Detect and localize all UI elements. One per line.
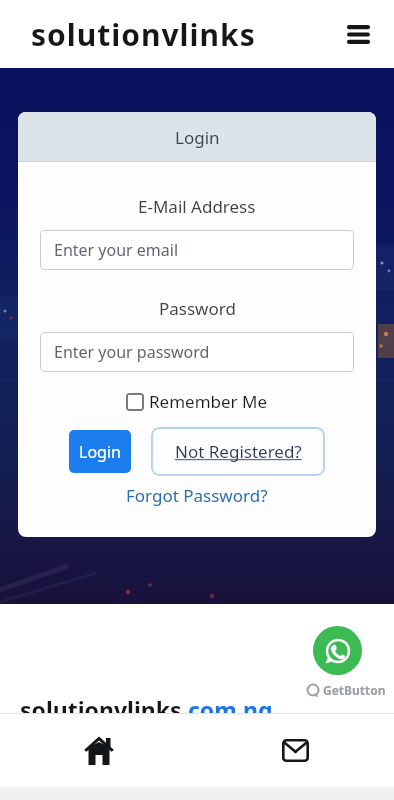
button[interactable]	[313, 626, 362, 675]
staticText: Password	[159, 297, 236, 320]
button[interactable]: Login	[69, 430, 131, 473]
staticText: GetButton	[323, 682, 386, 698]
button[interactable]	[197, 714, 394, 787]
button[interactable]	[338, 14, 378, 54]
button[interactable]: Enter your email	[40, 230, 354, 270]
button[interactable]: Remember Me	[18, 390, 376, 413]
button[interactable]: Enter your password	[40, 332, 354, 372]
staticText: Enter your email	[54, 239, 179, 261]
button[interactable]	[0, 714, 197, 787]
staticText: Login	[79, 441, 121, 463]
staticText: Not Registered?	[175, 440, 302, 463]
staticText: solutionvlinks	[31, 14, 256, 55]
button[interactable]: Not Registered?	[151, 427, 325, 476]
staticText: Remember Me	[149, 390, 268, 413]
staticText: Enter your password	[54, 341, 210, 363]
staticText: solutionvlinks.com.ng	[20, 694, 273, 725]
button[interactable]: Forgot Password?	[126, 484, 268, 507]
staticText: E-Mail Address	[138, 195, 256, 218]
staticText: Login	[175, 126, 220, 149]
